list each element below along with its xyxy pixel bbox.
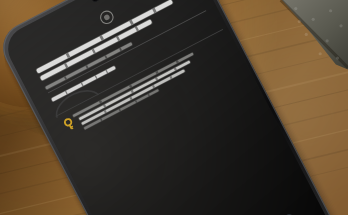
button[interactable]: Phone on wooden desk bbox=[0, 0, 348, 215]
